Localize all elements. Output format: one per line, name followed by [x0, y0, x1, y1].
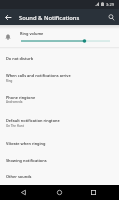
staticText: Sound & Notifications — [19, 14, 80, 22]
staticText: Ring — [6, 79, 13, 83]
button[interactable]: Default notification ringtone — [0, 111, 119, 134]
button[interactable]: Search — [103, 9, 119, 25]
staticText: 3:29 — [106, 2, 114, 7]
staticText: Andromeda — [6, 100, 23, 104]
button[interactable]: Back — [11, 185, 35, 200]
staticText: Other sounds — [6, 174, 32, 179]
staticText: On The Hunt — [6, 124, 24, 128]
button[interactable]: Phone ringtone — [0, 88, 119, 111]
staticText: Default notification ringtone — [6, 118, 60, 123]
button[interactable]: When calls and notifications arrive — [0, 66, 119, 88]
button[interactable]: Do not disturb — [0, 49, 119, 66]
button[interactable]: Home — [47, 185, 71, 200]
staticText: Ring volume — [20, 31, 44, 36]
button[interactable]: Navigate up — [0, 9, 16, 25]
button[interactable]: Vibrate when ringing — [0, 134, 119, 151]
button[interactable]: Recent apps — [81, 185, 105, 200]
button[interactable]: Showing notifications — [0, 151, 119, 167]
staticText: Vibrate when ringing — [6, 141, 46, 146]
staticText: Do not disturb — [6, 56, 34, 61]
staticText: When calls and notifications arrive — [6, 73, 71, 78]
button[interactable]: Other sounds — [0, 167, 119, 183]
staticText: Phone ringtone — [6, 95, 36, 100]
staticText: Showing notifications — [6, 158, 47, 163]
